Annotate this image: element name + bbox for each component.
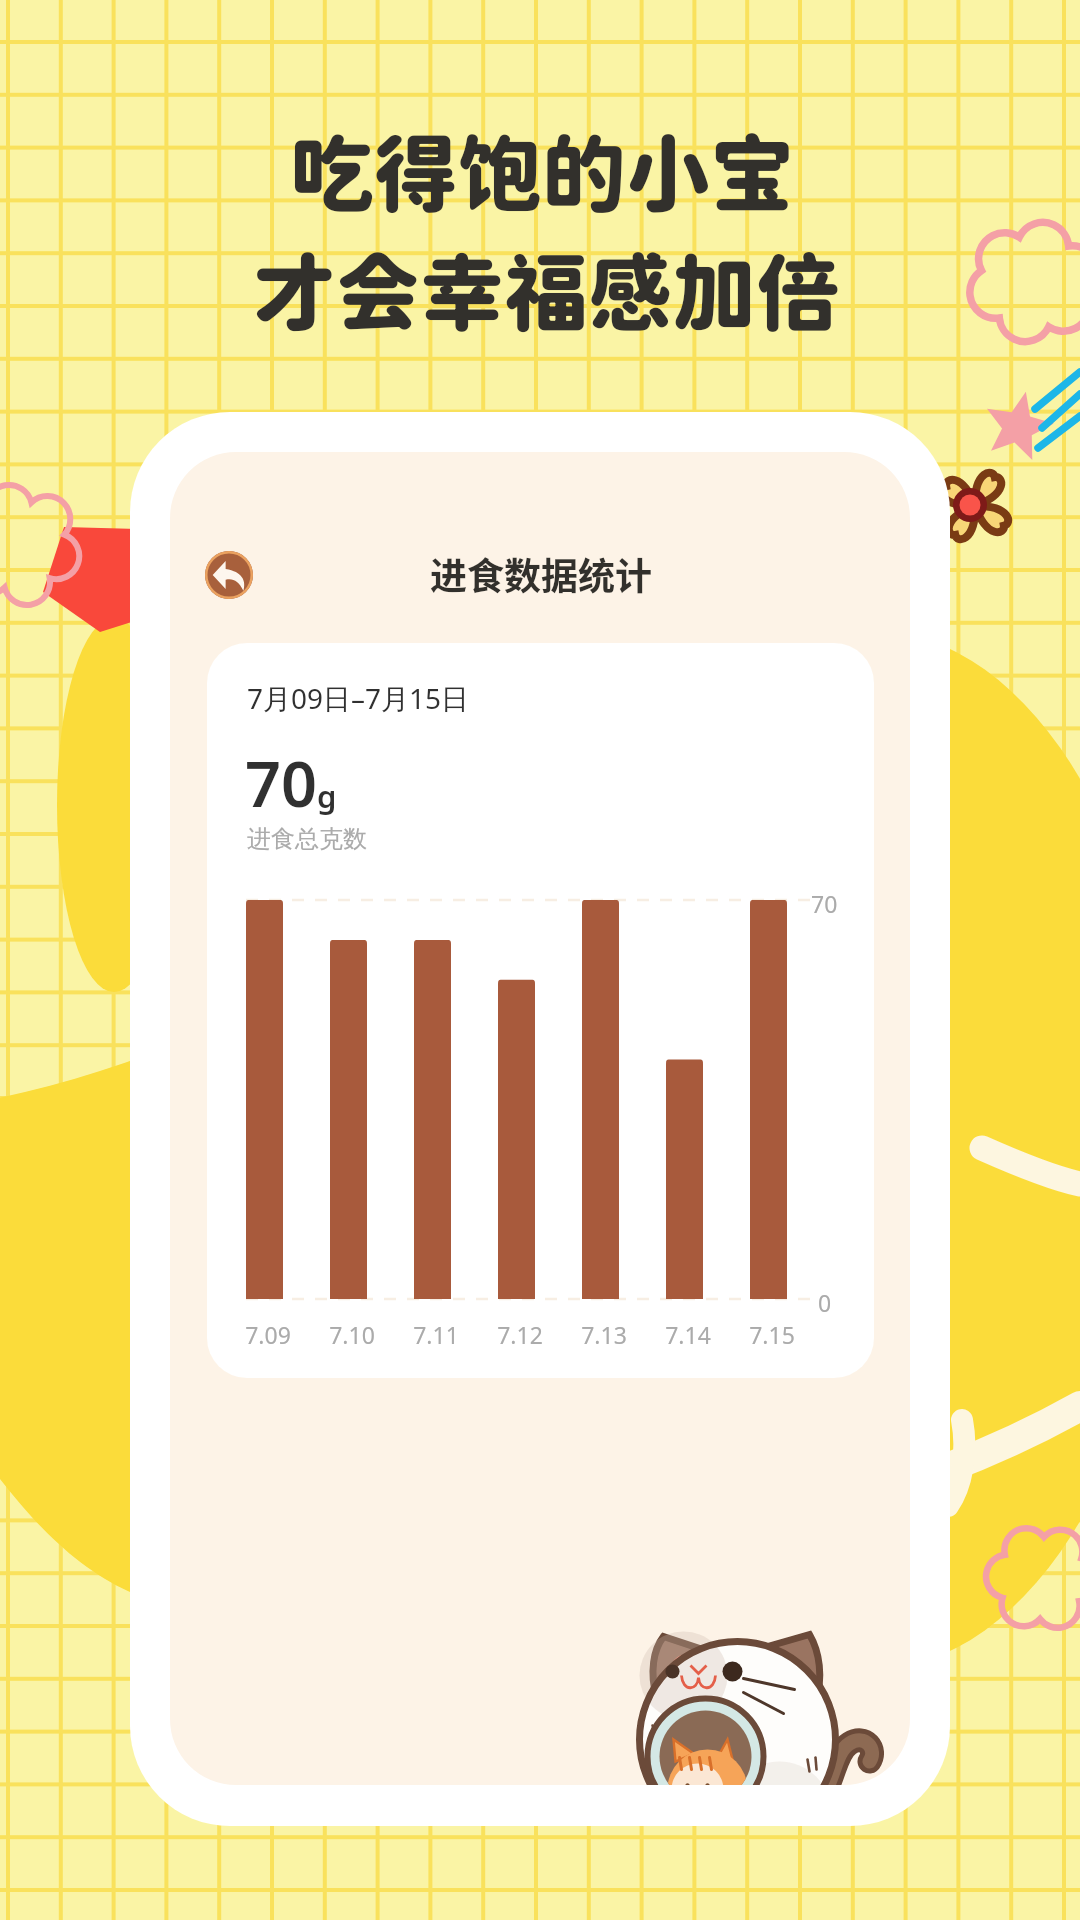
staticText: 7.11 <box>413 1319 459 1350</box>
staticText: 7.13 <box>581 1319 627 1350</box>
staticText: 7.09 <box>245 1319 291 1350</box>
staticText: 7月09日–7月15日 <box>247 679 470 717</box>
staticText: 进食总克数 <box>247 824 367 854</box>
button[interactable]: 7月09日–7月15日 <box>207 643 874 1378</box>
staticText: g <box>317 775 337 817</box>
staticText: 0 <box>818 1287 832 1318</box>
button[interactable]: Back <box>205 551 253 599</box>
staticText: 7.10 <box>329 1319 375 1350</box>
staticText: 进食数据统计 <box>430 547 652 601</box>
staticText: 7.15 <box>749 1319 795 1350</box>
staticText: 才会幸福感加倍 <box>252 243 841 342</box>
staticText: 7.14 <box>665 1319 711 1350</box>
staticText: 7.12 <box>497 1319 543 1350</box>
staticText: 70 <box>245 740 318 826</box>
staticText: 吃得饱的小宝 <box>290 124 795 223</box>
staticText: 70 <box>811 888 838 919</box>
